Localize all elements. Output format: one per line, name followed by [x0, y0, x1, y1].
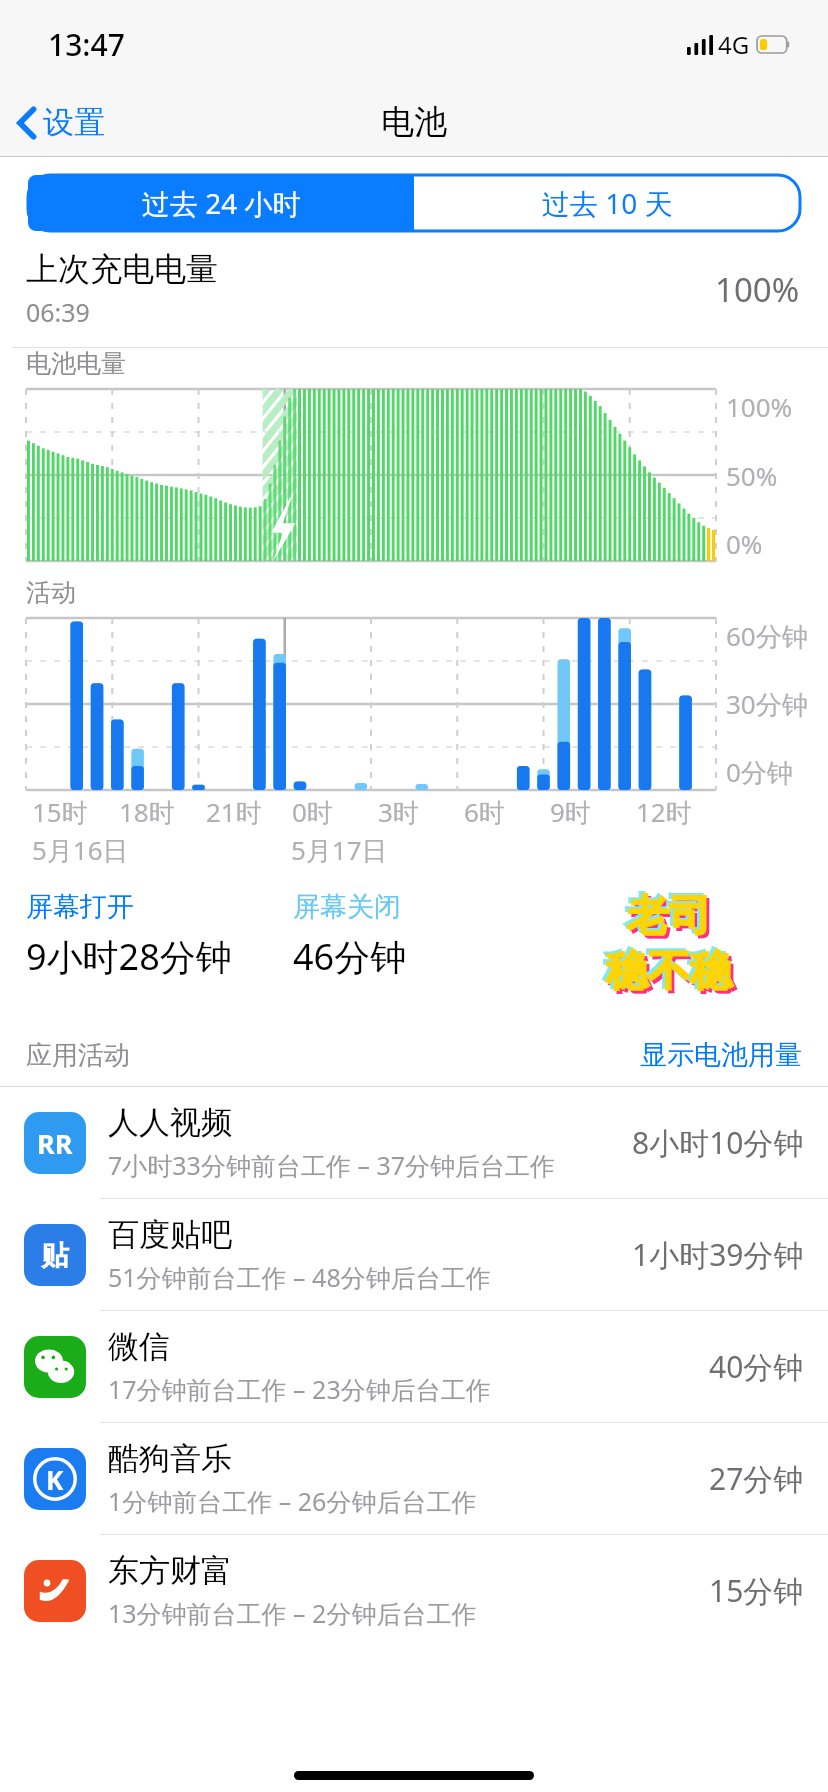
button[interactable]: 设置	[0, 95, 119, 150]
button[interactable]: 贴	[0, 1199, 828, 1310]
button[interactable]: 微信	[0, 1311, 828, 1422]
staticText: 过去 10 天	[542, 184, 673, 222]
staticText: 百度贴吧	[108, 1215, 232, 1254]
staticText: 电池电量	[26, 348, 126, 379]
staticText: 4G	[718, 28, 750, 61]
button[interactable]: 过去 24 小时	[28, 175, 414, 231]
staticText: 酷狗音乐	[108, 1439, 232, 1478]
staticText: 老司	[630, 893, 714, 946]
staticText: 100%	[726, 389, 793, 424]
staticText: 12时	[636, 794, 692, 830]
staticText: 屏幕关闭	[293, 890, 401, 924]
staticText: 过去 24 小时	[142, 184, 301, 222]
staticText: 13:47	[48, 24, 125, 65]
staticText: 8小时10分钟	[632, 1122, 804, 1163]
button[interactable]: 显示电池用量	[640, 1038, 802, 1072]
staticText: 30分钟	[726, 686, 808, 722]
staticText: 51分钟前台工作 – 48分钟后台工作	[108, 1260, 491, 1294]
staticText: 稳不稳	[609, 948, 735, 1001]
staticText: 贴	[41, 1238, 69, 1273]
staticText: 0%	[726, 526, 763, 561]
staticText: 稳不稳	[606, 945, 732, 998]
staticText: 老司	[627, 890, 711, 943]
staticText: 50%	[726, 458, 778, 493]
staticText: 显示电池用量	[640, 1038, 802, 1072]
staticText: 5月16日	[32, 832, 129, 868]
staticText: 15分钟	[709, 1570, 804, 1611]
staticText: RR	[37, 1125, 73, 1162]
staticText: 微信	[108, 1327, 170, 1366]
staticText: 活动	[26, 577, 76, 608]
button[interactable]: 东方财富	[0, 1535, 828, 1646]
staticText: 06:39	[26, 295, 90, 329]
staticText: 17分钟前台工作 – 23分钟后台工作	[108, 1372, 491, 1406]
button[interactable]: 过去 10 天	[414, 175, 800, 231]
staticText: 100%	[715, 267, 800, 312]
staticText: 0分钟	[726, 754, 793, 790]
staticText: 9小时28分钟	[26, 932, 232, 981]
staticText: 3时	[378, 794, 419, 830]
staticText: 1小时39分钟	[632, 1234, 804, 1275]
staticText: 46分钟	[293, 932, 407, 981]
staticText: 40分钟	[709, 1346, 804, 1387]
staticText: 东方财富	[108, 1551, 232, 1590]
staticText: 上次充电电量	[26, 249, 218, 289]
staticText: 屏幕打开	[26, 890, 134, 924]
staticText: 稳不稳	[603, 943, 729, 996]
staticText: 6时	[464, 794, 505, 830]
staticText: 60分钟	[726, 618, 808, 654]
staticText: 设置	[43, 103, 105, 142]
staticText: 0时	[292, 794, 333, 830]
staticText: 电池	[381, 101, 447, 143]
staticText: 7小时33分钟前台工作 – 37分钟后台工作	[108, 1148, 556, 1182]
staticText: 5月17日	[291, 832, 388, 868]
staticText: 21时	[206, 794, 262, 830]
staticText: 9时	[550, 794, 591, 830]
staticText: 1分钟前台工作 – 26分钟后台工作	[108, 1484, 477, 1518]
staticText: 15时	[32, 794, 88, 830]
staticText: 人人视频	[108, 1103, 232, 1142]
staticText: 13分钟前台工作 – 2分钟后台工作	[108, 1596, 477, 1630]
staticText: K	[46, 1462, 64, 1497]
staticText: 应用活动	[26, 1039, 130, 1072]
button[interactable]: RR	[0, 1087, 828, 1198]
staticText: 27分钟	[709, 1458, 804, 1499]
button[interactable]: K	[0, 1423, 828, 1534]
staticText: 老司	[624, 888, 708, 941]
staticText: 18时	[119, 794, 175, 830]
